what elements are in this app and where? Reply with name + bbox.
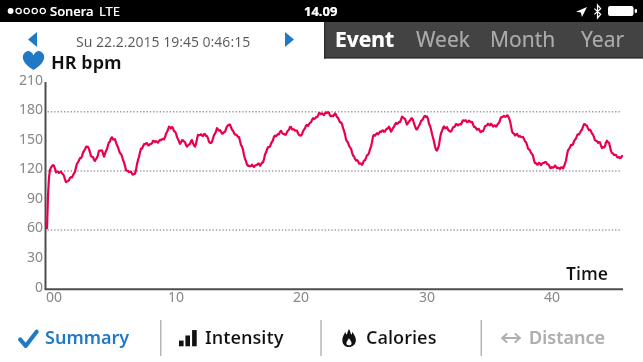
staticText: 20 bbox=[293, 287, 310, 303]
button[interactable]: Calories bbox=[321, 313, 482, 362]
staticText: 0 bbox=[34, 277, 43, 293]
staticText: HR bpm bbox=[51, 50, 122, 75]
staticText: 14.09 bbox=[304, 2, 338, 20]
staticText: Intensity bbox=[205, 325, 284, 350]
staticText: Year bbox=[581, 25, 625, 54]
staticText: 210 bbox=[18, 70, 43, 86]
button[interactable]: Summary bbox=[0, 313, 160, 362]
staticText: 30 bbox=[26, 247, 43, 263]
staticText: 180 bbox=[18, 99, 43, 115]
button[interactable]: Month bbox=[483, 22, 563, 57]
button[interactable]: Next bbox=[278, 27, 300, 51]
button[interactable]: Previous bbox=[21, 27, 43, 51]
staticText: Event bbox=[335, 25, 395, 54]
staticText: 10 bbox=[168, 287, 185, 303]
staticText: Time bbox=[566, 261, 608, 285]
button[interactable]: Distance bbox=[482, 313, 643, 362]
staticText: Calories bbox=[366, 325, 437, 350]
staticText: 60 bbox=[26, 217, 43, 233]
staticText: 30 bbox=[419, 287, 436, 303]
button[interactable]: Intensity bbox=[160, 313, 321, 362]
staticText: 120 bbox=[18, 158, 43, 174]
button[interactable]: Event bbox=[325, 22, 404, 57]
staticText: Summary bbox=[45, 325, 130, 350]
staticText: Su 22.2.2015 19:45 0:46:15 bbox=[76, 32, 251, 51]
staticText: LTE bbox=[99, 2, 121, 20]
staticText: Sonera bbox=[50, 2, 94, 20]
staticText: Week bbox=[416, 25, 471, 54]
staticText: 150 bbox=[18, 129, 43, 145]
staticText: 90 bbox=[26, 188, 43, 204]
staticText: 00 bbox=[46, 287, 63, 303]
button[interactable]: Year bbox=[563, 22, 643, 57]
staticText: Month bbox=[490, 25, 556, 54]
staticText: 40 bbox=[544, 287, 561, 303]
button[interactable]: Week bbox=[404, 22, 483, 57]
staticText: Distance bbox=[529, 325, 606, 350]
